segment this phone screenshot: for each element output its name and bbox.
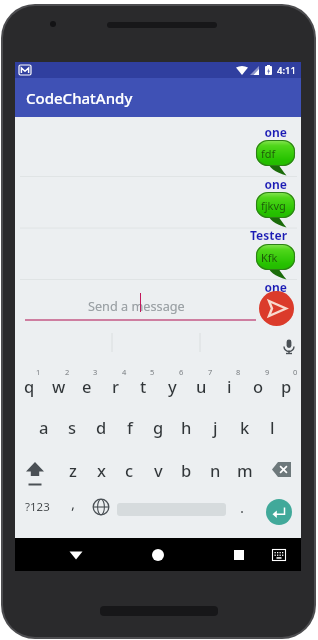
- button[interactable]: a: [29, 406, 58, 447]
- button[interactable]: l: [258, 406, 287, 447]
- staticText: Tester: [15, 227, 287, 243]
- staticText: g: [153, 416, 164, 438]
- button[interactable]: c: [115, 449, 144, 490]
- button[interactable]: h: [172, 406, 201, 447]
- button[interactable]: b: [172, 449, 201, 490]
- staticText: one: [15, 124, 287, 140]
- staticText: b: [181, 459, 192, 481]
- staticText: 3: [93, 367, 98, 377]
- button[interactable]: .: [232, 491, 252, 523]
- button[interactable]: 0: [272, 365, 301, 406]
- button[interactable]: k: [230, 406, 259, 447]
- staticText: e: [82, 375, 92, 397]
- button[interactable]: [15, 118, 301, 169]
- button[interactable]: ,: [61, 487, 85, 519]
- staticText: 9: [265, 367, 270, 377]
- button[interactable]: CodeChatAndy: [15, 78, 301, 117]
- staticText: y: [168, 375, 177, 397]
- button[interactable]: 2: [44, 365, 73, 406]
- staticText: v: [154, 459, 163, 481]
- button[interactable]: 5: [129, 365, 158, 406]
- staticText: 4: [122, 367, 127, 377]
- staticText: ?123: [25, 499, 50, 515]
- staticText: one: [15, 176, 287, 192]
- button[interactable]: j: [201, 406, 230, 447]
- button[interactable]: Voice input: [280, 338, 298, 356]
- staticText: Kfk: [261, 250, 278, 265]
- button[interactable]: 9: [244, 365, 273, 406]
- button[interactable]: [15, 170, 301, 221]
- staticText: 1: [36, 367, 41, 377]
- button[interactable]: d: [87, 406, 116, 447]
- staticText: m: [237, 459, 253, 481]
- staticText: 5: [150, 367, 155, 377]
- button[interactable]: Shift: [21, 449, 49, 490]
- button[interactable]: Send: [259, 291, 294, 326]
- button[interactable]: 4: [101, 365, 130, 406]
- button[interactable]: n: [201, 449, 230, 490]
- staticText: 8: [236, 367, 241, 377]
- button[interactable]: Backspace: [264, 454, 296, 485]
- staticText: ,: [71, 493, 76, 513]
- staticText: 7: [208, 367, 213, 377]
- button[interactable]: Change language: [92, 498, 110, 516]
- staticText: h: [181, 416, 192, 438]
- staticText: fdf: [261, 146, 276, 161]
- button[interactable]: 3: [72, 365, 101, 406]
- staticText: j: [213, 416, 218, 438]
- staticText: u: [196, 375, 207, 397]
- staticText: .: [240, 497, 245, 517]
- button[interactable]: 6: [158, 365, 187, 406]
- staticText: p: [281, 375, 292, 397]
- staticText: t: [140, 375, 147, 397]
- staticText: d: [96, 416, 107, 438]
- button[interactable]: Home: [145, 542, 171, 568]
- staticText: fjkvg: [261, 198, 286, 213]
- button[interactable]: Back: [63, 542, 89, 568]
- button[interactable]: x: [87, 449, 116, 490]
- staticText: 0: [293, 367, 298, 377]
- staticText: x: [97, 459, 106, 481]
- staticText: w: [52, 375, 66, 397]
- staticText: s: [68, 416, 77, 438]
- button[interactable]: Switch keyboard: [272, 549, 286, 561]
- staticText: l: [270, 416, 275, 438]
- staticText: Send a message: [88, 297, 185, 314]
- staticText: r: [112, 375, 119, 397]
- staticText: q: [24, 375, 35, 397]
- button[interactable]: s: [58, 406, 87, 447]
- button[interactable]: g: [144, 406, 173, 447]
- staticText: z: [69, 459, 77, 481]
- button[interactable]: Recents: [226, 542, 252, 568]
- staticText: 4:11: [277, 64, 296, 77]
- button[interactable]: 1: [15, 365, 44, 406]
- staticText: n: [210, 459, 221, 481]
- staticText: f: [127, 416, 133, 438]
- button[interactable]: m: [230, 449, 259, 490]
- button[interactable]: v: [144, 449, 173, 490]
- staticText: a: [39, 416, 49, 438]
- staticText: c: [125, 459, 134, 481]
- staticText: one: [15, 279, 287, 295]
- staticText: o: [253, 375, 264, 397]
- button[interactable]: ?123: [18, 491, 56, 523]
- staticText: k: [240, 416, 250, 438]
- staticText: 2: [65, 367, 70, 377]
- button[interactable]: z: [58, 449, 87, 490]
- button[interactable]: f: [115, 406, 144, 447]
- staticText: CodeChatAndy: [26, 88, 133, 108]
- button[interactable]: 7: [187, 365, 216, 406]
- button[interactable]: Enter: [266, 499, 292, 525]
- staticText: i: [227, 375, 232, 397]
- button[interactable]: 8: [215, 365, 244, 406]
- button[interactable]: [15, 221, 301, 272]
- staticText: 6: [179, 367, 184, 377]
